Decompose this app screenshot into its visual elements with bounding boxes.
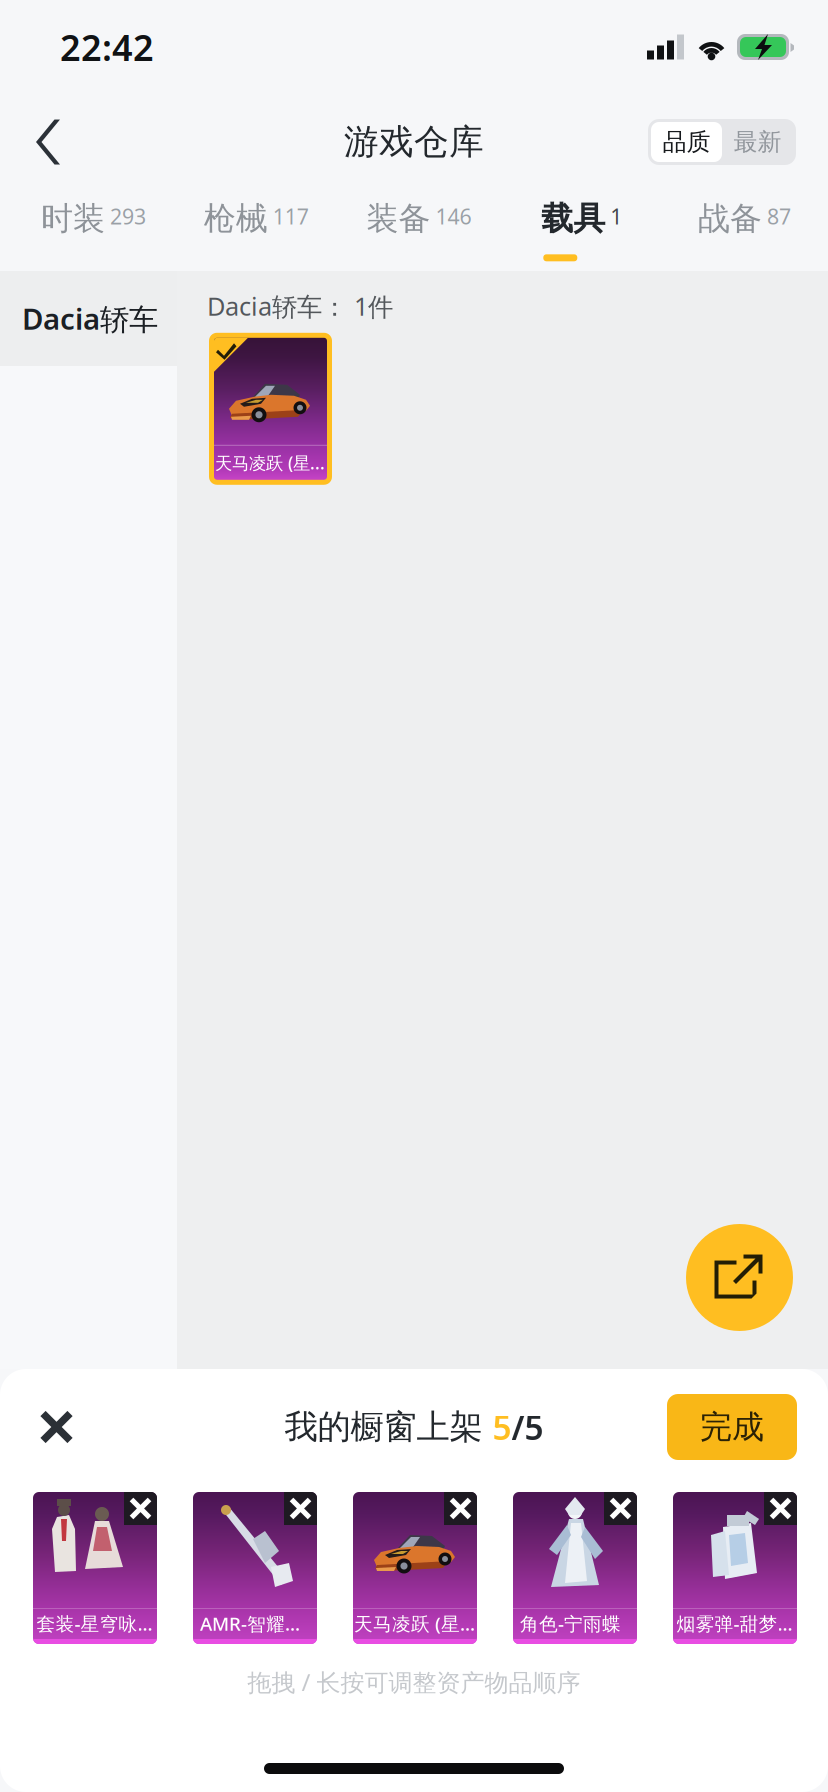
button[interactable]: 装备 xyxy=(338,190,500,271)
button[interactable]: 关闭 xyxy=(0,1384,104,1470)
button[interactable]: 最新 xyxy=(722,122,793,162)
staticText: Dacia轿车 xyxy=(22,299,158,338)
button[interactable]: 移除 xyxy=(284,1492,317,1525)
staticText: 293 xyxy=(110,202,146,230)
button[interactable]: 天马凌跃 (星... xyxy=(209,333,332,485)
staticText: 22:42 xyxy=(60,23,154,71)
staticText: 载具 xyxy=(541,199,605,238)
button[interactable]: 分享 xyxy=(686,1224,793,1331)
staticText: 套装-星穹咏... xyxy=(36,1611,152,1636)
staticText: 天马凌跃 (星... xyxy=(215,451,325,474)
staticText: 时装 xyxy=(41,199,105,238)
button[interactable]: 载具 xyxy=(500,190,663,271)
button[interactable]: 移除 xyxy=(124,1492,157,1525)
staticText: 1 xyxy=(610,202,622,230)
staticText: /5 xyxy=(511,1405,543,1449)
staticText: 装备 xyxy=(366,199,430,238)
button[interactable]: 移除 xyxy=(764,1492,797,1525)
button[interactable]: 完成 xyxy=(667,1394,797,1460)
button[interactable]: 移除 xyxy=(444,1492,477,1525)
button[interactable]: 枪械 xyxy=(175,190,338,271)
staticText: 完成 xyxy=(700,1407,764,1447)
staticText: AMR-智耀... xyxy=(200,1611,300,1636)
staticText: 烟雾弹-甜梦... xyxy=(676,1611,792,1636)
button[interactable]: 返回 xyxy=(0,94,100,190)
button[interactable]: 移除 xyxy=(604,1492,637,1525)
staticText: 117 xyxy=(273,202,309,230)
staticText: 天马凌跃 (星... xyxy=(354,1611,475,1636)
staticText: 角色-宁雨蝶 xyxy=(520,1611,621,1636)
staticText: 5 xyxy=(492,1405,511,1449)
staticText: 枪械 xyxy=(204,199,268,238)
staticText: 拖拽 / 长按可调整资产物品顺序 xyxy=(247,1666,580,1698)
staticText: 我的橱窗上架 xyxy=(284,1406,492,1447)
staticText: 87 xyxy=(767,202,791,230)
button[interactable]: Dacia轿车 xyxy=(0,271,177,366)
staticText: 最新 xyxy=(733,127,781,157)
button[interactable]: 战备 xyxy=(663,190,826,271)
staticText: Dacia轿车： 1件 xyxy=(207,289,393,323)
button[interactable]: 时装 xyxy=(12,190,175,271)
staticText: 战备 xyxy=(698,199,762,238)
staticText: 品质 xyxy=(662,127,710,157)
staticText: 146 xyxy=(435,202,471,230)
staticText: 游戏仓库 xyxy=(344,121,484,163)
button[interactable]: 品质 xyxy=(651,122,722,162)
